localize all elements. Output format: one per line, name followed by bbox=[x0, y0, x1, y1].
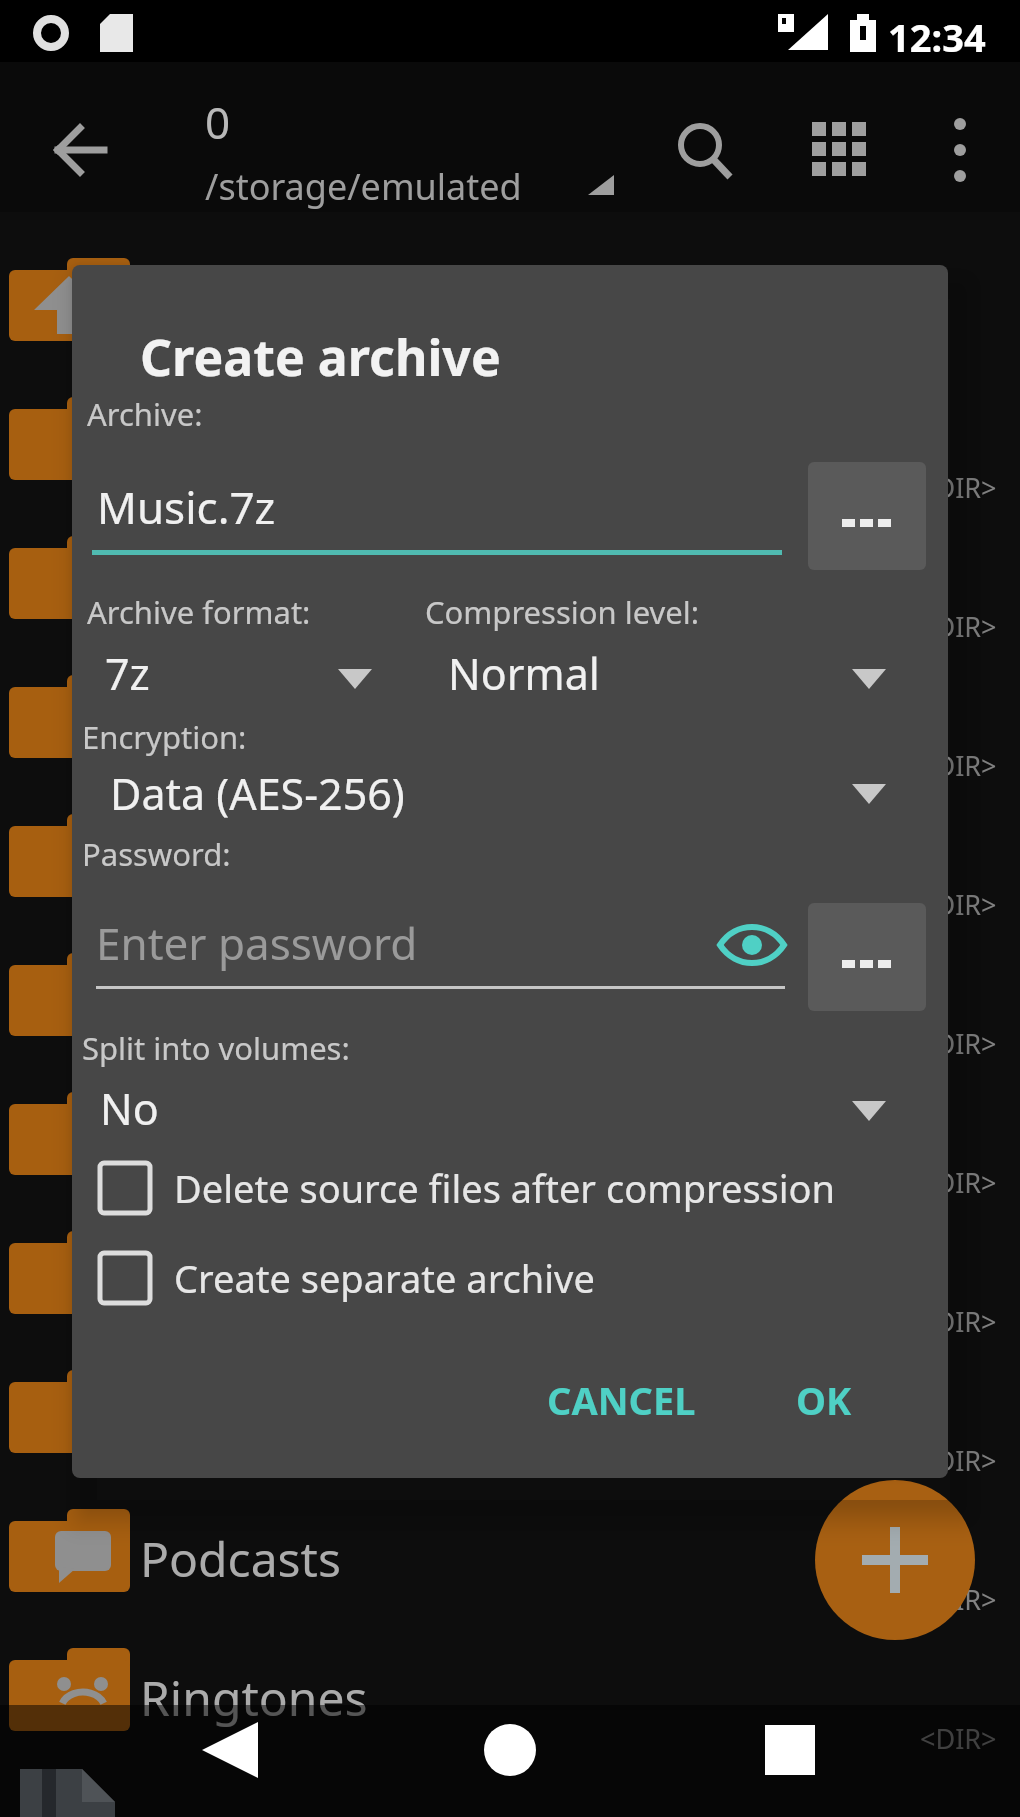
staticText: <DIR> bbox=[920, 1303, 997, 1340]
staticText: Movies bbox=[140, 970, 299, 1035]
staticText: 0 bbox=[205, 92, 231, 152]
button[interactable] bbox=[808, 903, 926, 1011]
button[interactable]: Android bbox=[0, 508, 1020, 647]
button[interactable] bbox=[815, 1480, 975, 1640]
staticText: Android bbox=[140, 553, 320, 618]
button[interactable]: Music bbox=[0, 1064, 1020, 1203]
button[interactable]: Delete source files after compression bbox=[96, 1159, 836, 1217]
staticText: <DIR> bbox=[920, 469, 997, 506]
staticText: DCIM bbox=[140, 692, 266, 757]
staticText: /storage/emulated bbox=[205, 162, 522, 211]
staticText: Enter password bbox=[96, 913, 418, 973]
staticText: <DIR> bbox=[920, 886, 997, 923]
button[interactable]: Movies bbox=[0, 925, 1020, 1064]
staticText: <DIR> bbox=[920, 1025, 997, 1062]
button[interactable]: Ringtones bbox=[0, 1620, 1020, 1759]
staticText: Notifications bbox=[140, 1248, 426, 1313]
staticText: Alarms bbox=[140, 414, 298, 479]
button[interactable]: Alarms bbox=[0, 369, 1020, 508]
button[interactable] bbox=[805, 117, 875, 183]
button[interactable]: OK bbox=[744, 1355, 904, 1445]
staticText: <DIR> bbox=[920, 608, 997, 645]
button[interactable]: Create separate archive bbox=[96, 1249, 595, 1307]
button[interactable] bbox=[460, 1700, 560, 1800]
staticText: <DIR> bbox=[920, 1164, 997, 1201]
button[interactable] bbox=[930, 117, 990, 183]
button[interactable]: DCIM bbox=[0, 647, 1020, 786]
button[interactable]: Data (AES-256) bbox=[102, 760, 902, 820]
staticText: Delete source files after compression bbox=[174, 1162, 836, 1214]
staticText: CANCEL bbox=[547, 1374, 696, 1426]
staticText: <DIR> bbox=[920, 1442, 997, 1479]
staticText: No bbox=[100, 1079, 159, 1138]
staticText: Normal bbox=[448, 644, 600, 703]
staticText: Encryption: bbox=[82, 716, 247, 758]
staticText: Ringtones bbox=[140, 1665, 368, 1730]
staticText: Music.7z bbox=[97, 477, 276, 537]
button[interactable] bbox=[670, 117, 740, 183]
button[interactable] bbox=[40, 122, 110, 178]
staticText: Data (AES-256) bbox=[110, 764, 405, 823]
button[interactable]: 7z bbox=[100, 640, 420, 700]
staticText: Password: bbox=[82, 833, 231, 875]
button[interactable] bbox=[0, 230, 1020, 369]
button[interactable] bbox=[740, 1700, 840, 1800]
staticText: Create separate archive bbox=[174, 1252, 595, 1304]
button[interactable]: Documents bbox=[0, 786, 1020, 925]
staticText: Archive format: bbox=[87, 591, 311, 633]
button[interactable]: Normal bbox=[442, 640, 902, 700]
staticText: 12:34 bbox=[888, 11, 986, 63]
button[interactable]: No bbox=[96, 1075, 906, 1135]
staticText: Archive: bbox=[87, 393, 203, 435]
staticText: <DIR> bbox=[920, 1581, 997, 1618]
button[interactable] bbox=[808, 462, 926, 570]
button[interactable]: CANCEL bbox=[501, 1355, 741, 1445]
staticText: Podcasts bbox=[140, 1526, 341, 1591]
button[interactable] bbox=[180, 1700, 280, 1800]
staticText: Create archive bbox=[140, 323, 501, 391]
staticText: OK bbox=[796, 1374, 852, 1426]
staticText: <DIR> bbox=[920, 747, 997, 784]
button[interactable]: Notifications bbox=[0, 1203, 1020, 1342]
button[interactable]: Podcasts bbox=[0, 1481, 1020, 1620]
staticText: Music bbox=[140, 1109, 272, 1174]
staticText: Compression level: bbox=[425, 591, 700, 633]
staticText: 7z bbox=[105, 644, 150, 703]
staticText: Split into volumes: bbox=[82, 1027, 350, 1069]
button[interactable] bbox=[712, 915, 792, 975]
staticText: <DIR> bbox=[920, 1720, 997, 1757]
button[interactable]: Pictures bbox=[0, 1342, 1020, 1481]
staticText: Documents bbox=[140, 831, 399, 896]
